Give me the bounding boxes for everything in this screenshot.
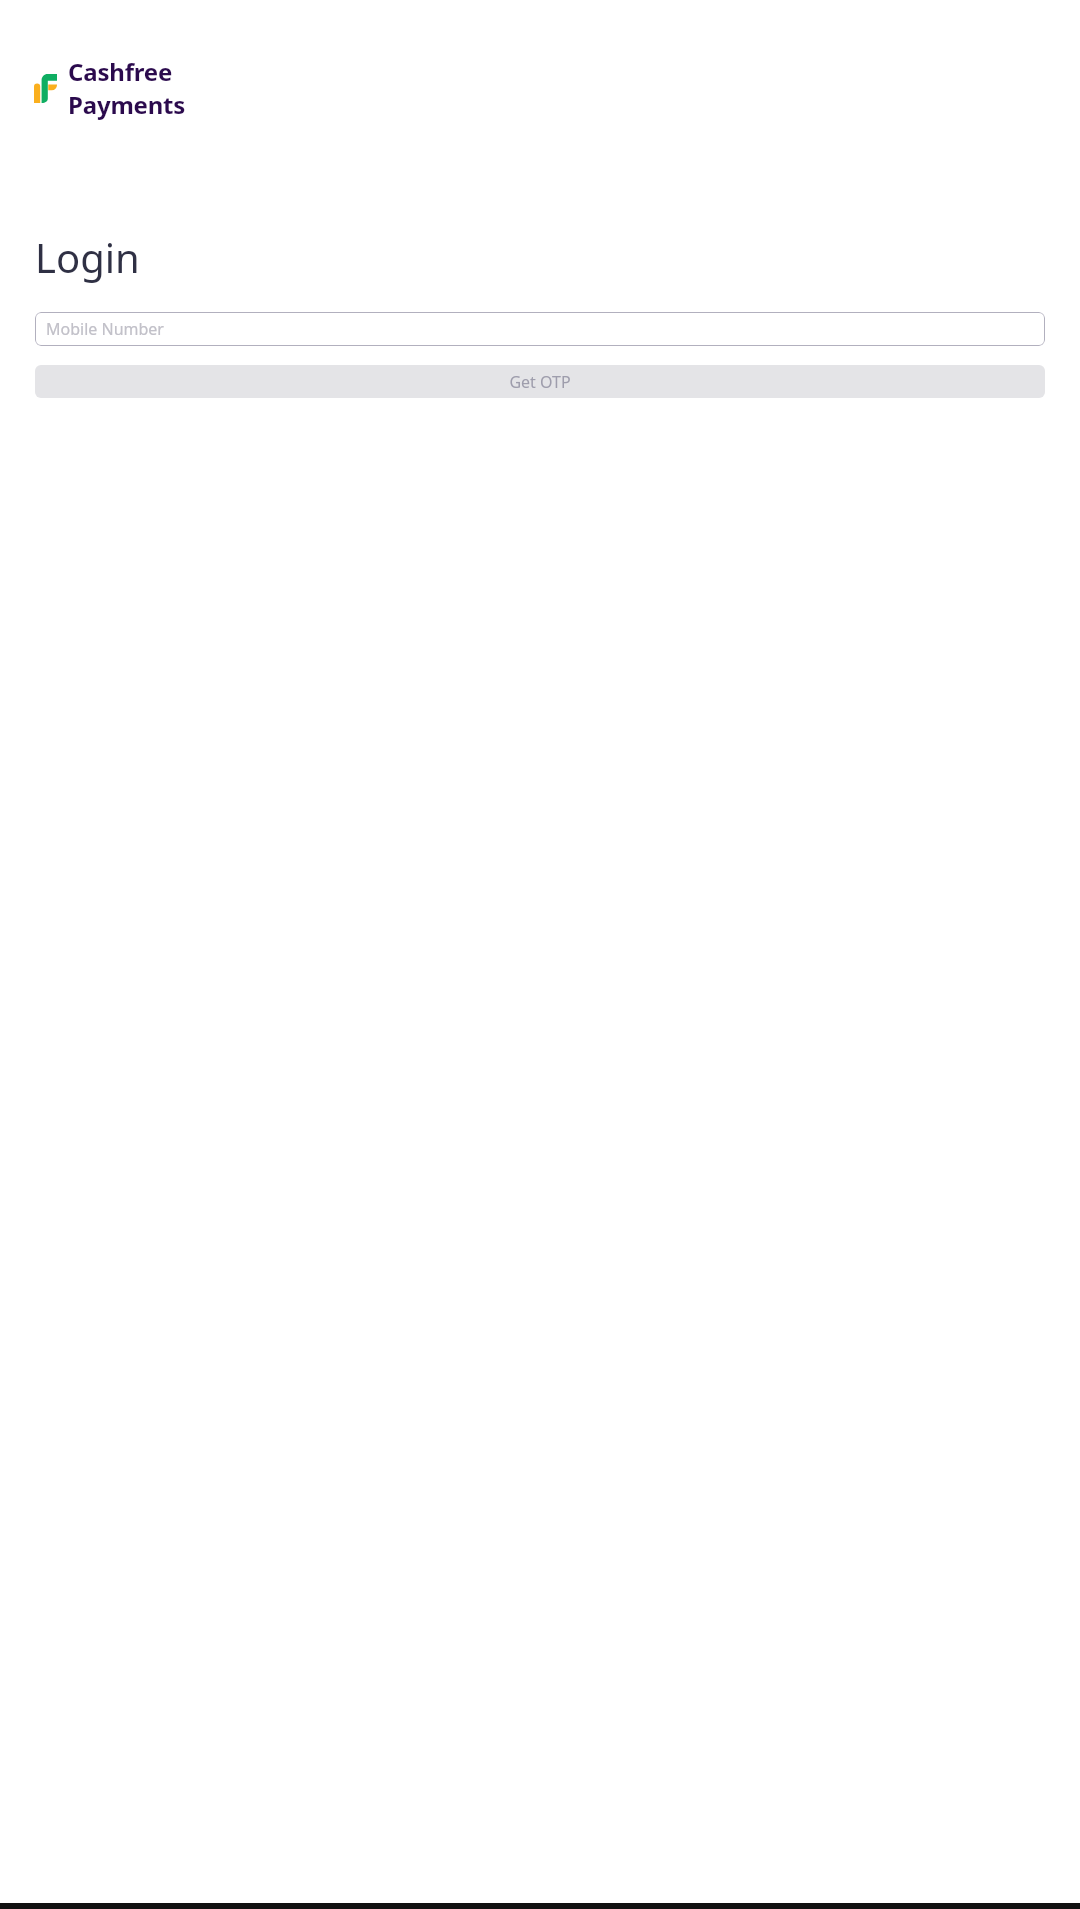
staticText: Mobile Number <box>46 318 164 340</box>
button[interactable]: Get OTP <box>35 365 1045 398</box>
staticText: Payments <box>68 88 186 121</box>
button[interactable]: Mobile Number <box>35 312 1045 346</box>
staticText: Get OTP <box>509 371 571 393</box>
staticText: Cashfree <box>68 55 173 88</box>
staticText: Login <box>35 230 140 284</box>
